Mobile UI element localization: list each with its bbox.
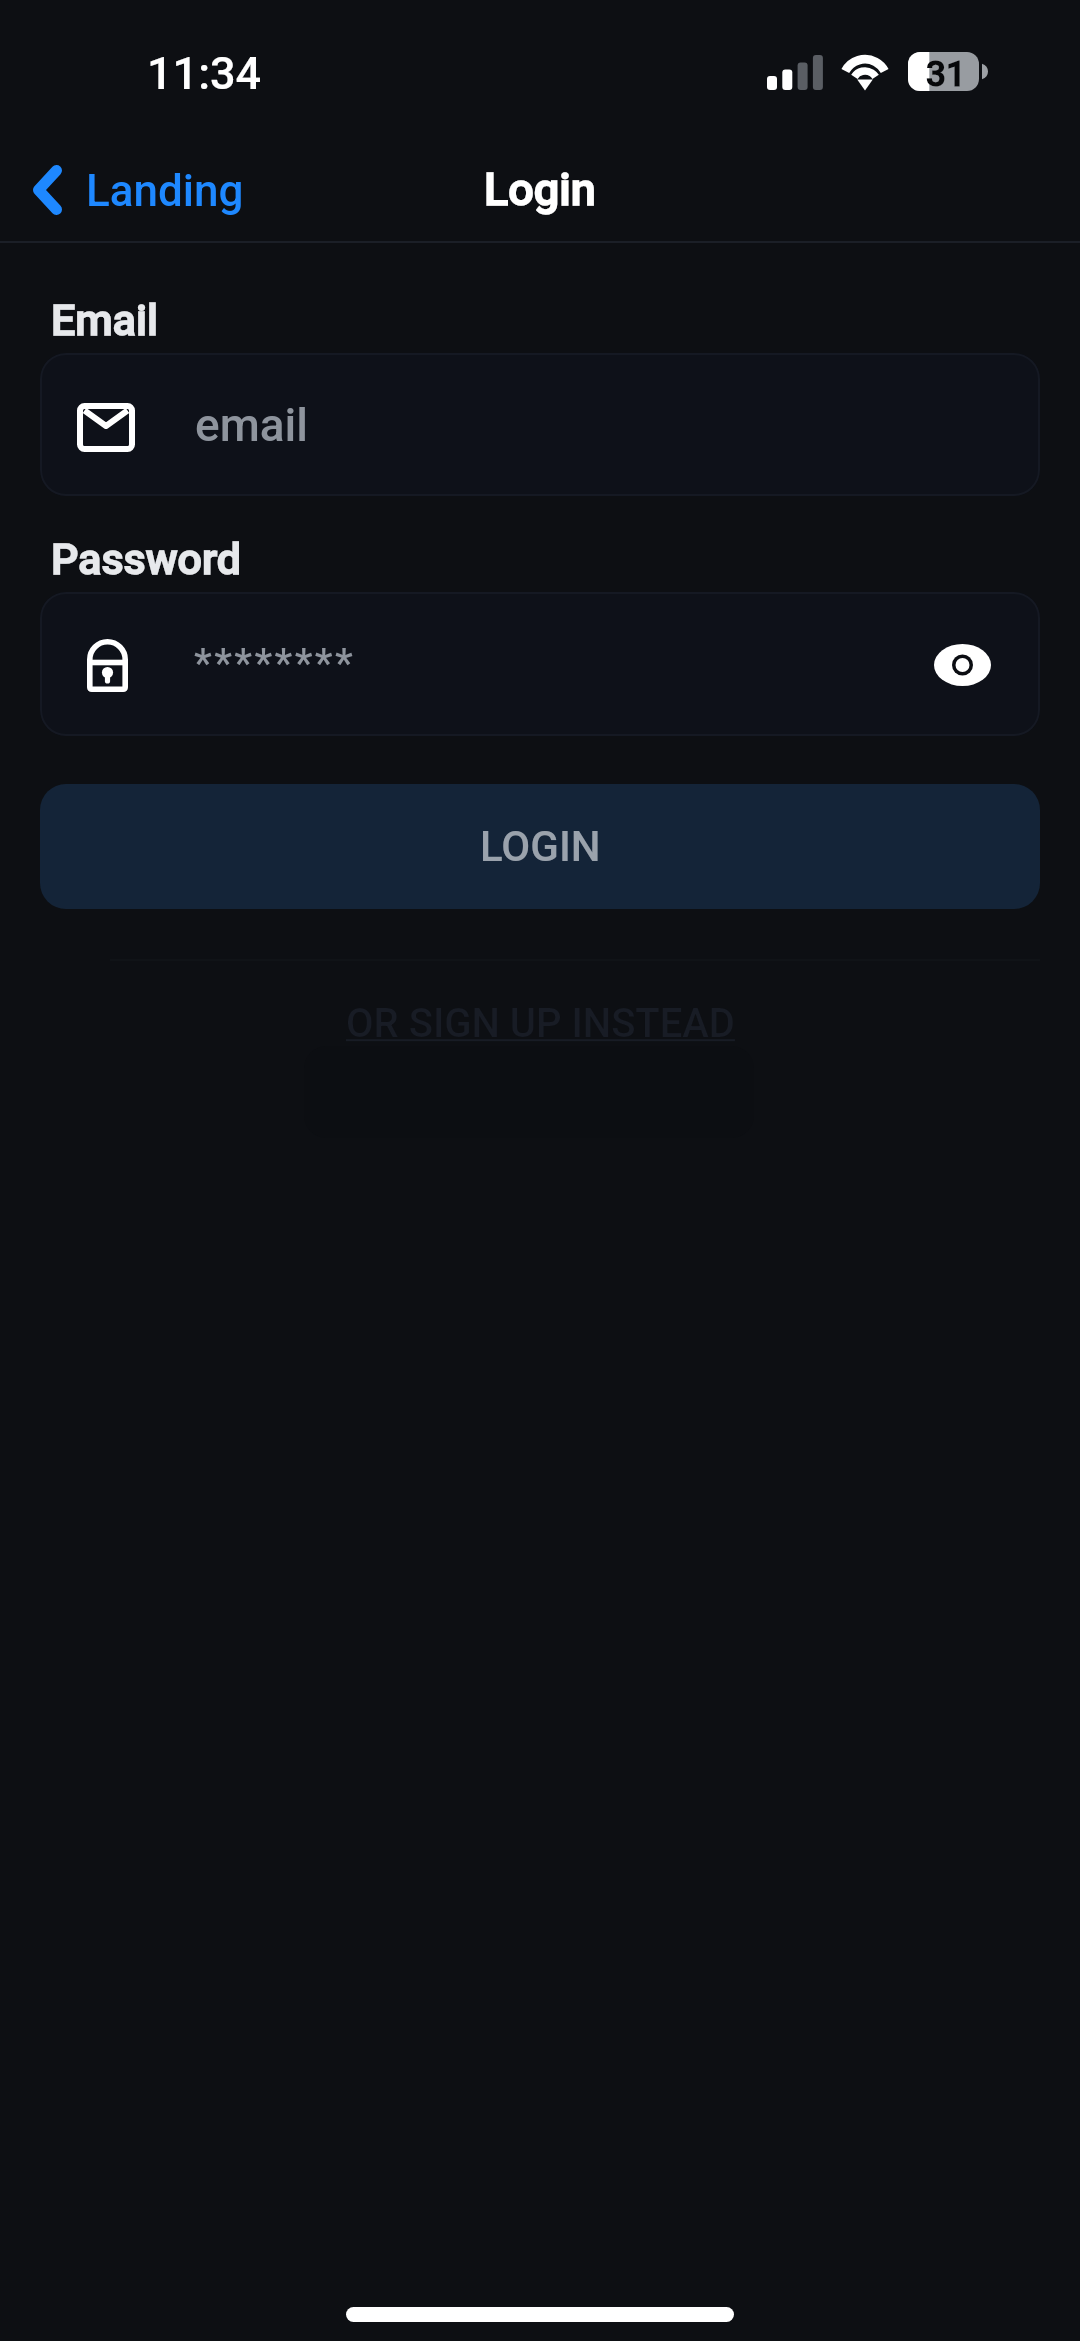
button[interactable]: ******** — [40, 592, 1040, 736]
staticText: Password — [51, 534, 241, 584]
button[interactable]: Landing — [18, 148, 226, 235]
staticText: 31 — [926, 54, 966, 93]
staticText: Landing — [86, 165, 244, 217]
button[interactable]: email — [40, 353, 1040, 496]
button[interactable]: OR SIGN UP INSTEAD — [346, 1000, 735, 1047]
staticText: LOGIN — [480, 822, 601, 871]
staticText: 11:34 — [147, 47, 262, 100]
staticText: ******** — [194, 640, 356, 687]
staticText: Email — [51, 295, 158, 345]
staticText: Login — [484, 163, 596, 216]
button[interactable]: Show password — [923, 625, 1001, 703]
staticText: email — [195, 398, 308, 452]
button[interactable]: LOGIN — [40, 784, 1040, 909]
